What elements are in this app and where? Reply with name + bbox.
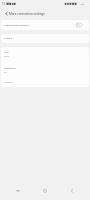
staticText: More connection settings [9, 12, 45, 16]
staticText: 100 [80, 3, 84, 6]
button[interactable]: Recent apps [9, 183, 27, 198]
button[interactable]: VPN [1, 47, 89, 62]
button[interactable]: Nearby device scanning toggle [76, 23, 82, 27]
button[interactable]: Home [36, 183, 54, 198]
button[interactable]: Back [63, 183, 81, 198]
button[interactable]: Private DNS [1, 62, 89, 78]
staticText: None [4, 55, 9, 58]
staticText: Nearby device scanning [4, 24, 29, 27]
staticText: 10:48 [2, 2, 9, 6]
staticText: Off [4, 71, 7, 74]
button[interactable]: Nearby device scanning [1, 20, 89, 30]
staticText: VPN [4, 51, 9, 54]
button[interactable]: Navigate up [0, 8, 9, 19]
button[interactable]: Ethernet [1, 78, 89, 87]
staticText: Ethernet [4, 81, 13, 84]
staticText: Printing [4, 37, 13, 40]
button[interactable]: Printing [1, 34, 89, 43]
staticText: Private DNS [4, 67, 17, 70]
